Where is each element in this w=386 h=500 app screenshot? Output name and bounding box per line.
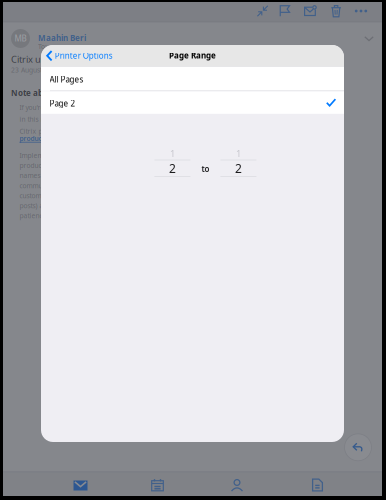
staticText: 23 August 2018 at 14:02	[11, 65, 88, 74]
button[interactable]: Calendar	[151, 478, 164, 491]
staticText: Page Range	[169, 50, 216, 61]
staticText: customers to the official blog	[19, 191, 110, 200]
staticText: Implementing the documentation. In-	[19, 151, 136, 160]
staticText: If you're interested in the products and	[19, 103, 141, 112]
staticText: names of the components such as	[19, 171, 125, 180]
staticText: 1	[170, 147, 175, 159]
staticText: All Pages	[49, 74, 83, 85]
button[interactable]: Delete	[324, 0, 348, 22]
staticText: Maahin Beri	[38, 32, 86, 43]
button[interactable]: Page 2	[41, 91, 344, 114]
staticText: patience.	[19, 211, 48, 220]
staticText: to	[201, 164, 209, 174]
staticText: MB	[14, 33, 26, 44]
staticText: Printer Options	[55, 50, 113, 61]
staticText: To: me	[38, 42, 59, 51]
staticText: 2	[235, 160, 242, 176]
staticText: Citrix product documentation at Citrix	[19, 127, 138, 136]
staticText: product help is available from earlier	[19, 161, 138, 170]
button[interactable]: Flag	[273, 0, 297, 22]
staticText: Citrix uberflow	[11, 53, 74, 65]
staticText: Page 2	[49, 98, 75, 109]
staticText: product docs	[19, 134, 60, 143]
staticText: 2	[169, 160, 176, 176]
button[interactable]: Printer Options	[44, 45, 119, 66]
button[interactable]: Reply	[344, 434, 371, 461]
button[interactable]: Mark as Unread	[298, 0, 322, 22]
button[interactable]: Files	[311, 478, 324, 491]
button[interactable]: Mail	[73, 480, 88, 491]
button[interactable]: Contacts	[230, 478, 243, 491]
staticText: in this release we recommend reading	[19, 115, 142, 124]
button[interactable]: All Pages	[41, 67, 344, 90]
button[interactable]: More	[349, 0, 373, 22]
button[interactable]: Collapse	[251, 0, 275, 22]
staticText: Note about licensing	[11, 87, 92, 98]
staticText: 1	[236, 147, 241, 159]
staticText: communication terms including	[19, 181, 118, 190]
staticText: posts) and we appreciate your	[19, 201, 114, 210]
